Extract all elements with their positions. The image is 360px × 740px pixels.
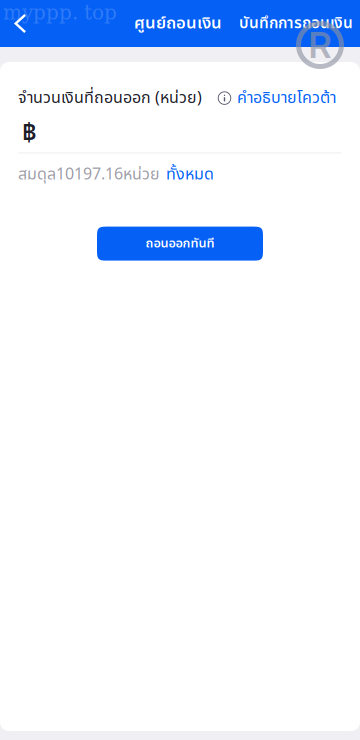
button[interactable]: บันทึกการถอนเงิน <box>239 0 353 47</box>
staticText: R <box>308 23 331 67</box>
staticText: ฿ <box>22 114 37 152</box>
staticText: บันทึกการถอนเงิน <box>239 12 353 35</box>
staticText: สมดุล10197.16หน่วย <box>18 162 160 187</box>
button[interactable]: ศูนย์ถอนเงิน <box>134 0 222 47</box>
button[interactable]: ถอนออกทันที <box>97 227 263 261</box>
staticText: ทั้งหมด <box>166 162 214 187</box>
staticText: myppp. top <box>3 1 117 24</box>
staticText: ศูนย์ถอนเงิน <box>134 11 222 36</box>
staticText: ถอนออกทันที <box>145 234 214 253</box>
staticText: จำนวนเงินที่ถอนออก (หน่วย) <box>18 86 202 110</box>
button[interactable]: คำอธิบายโควต้า <box>202 86 336 110</box>
button[interactable]: Back <box>0 0 40 47</box>
button[interactable]: ทั้งหมด <box>160 162 214 187</box>
staticText: คำอธิบายโควต้า <box>237 86 336 110</box>
